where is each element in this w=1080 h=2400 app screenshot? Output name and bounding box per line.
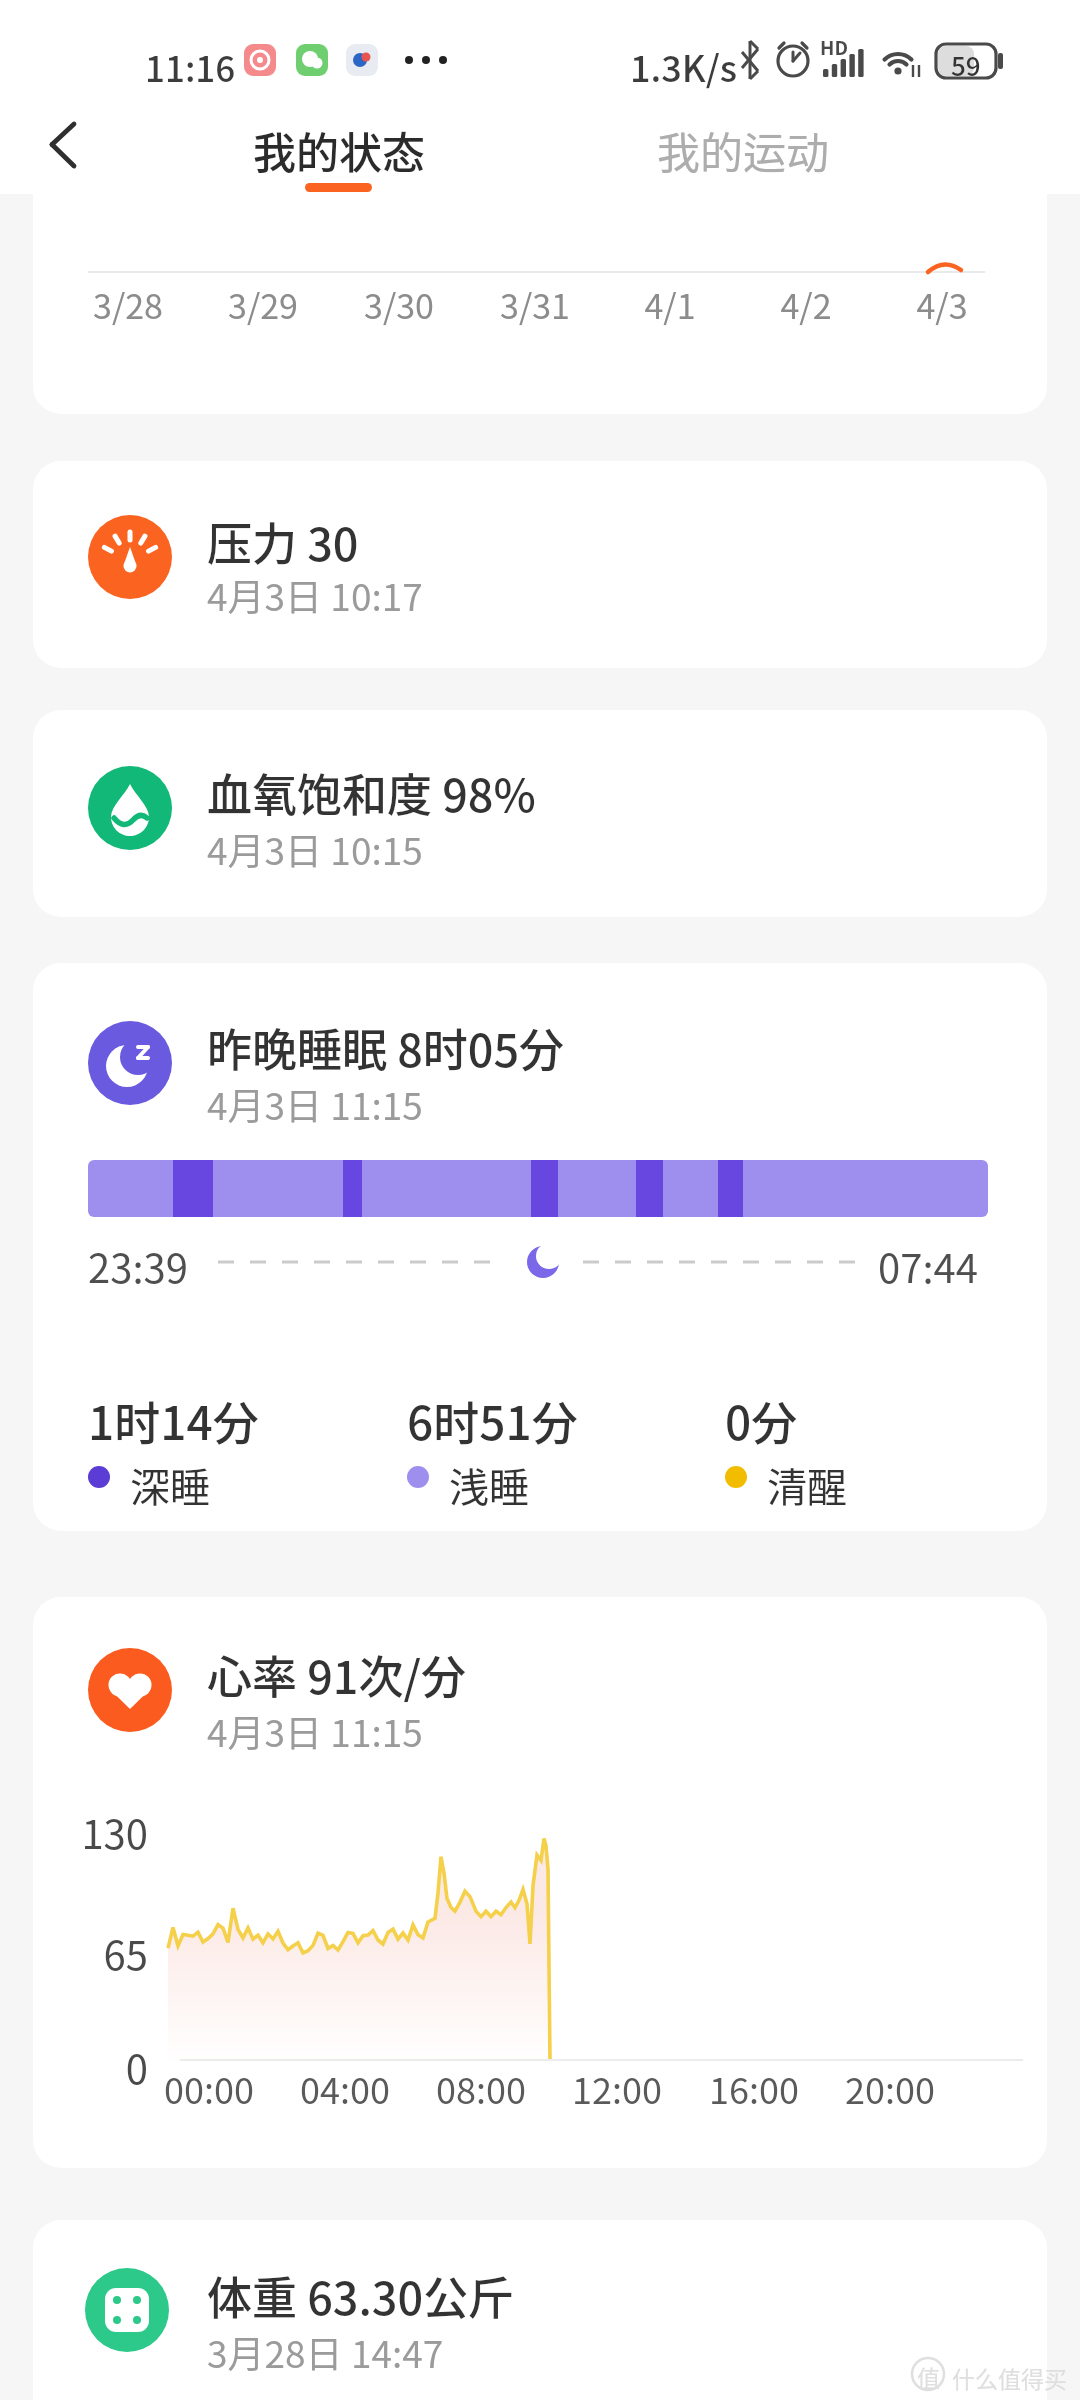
staticText: 清醒 <box>767 1456 847 1514</box>
staticText: 血氧饱和度 98% <box>207 760 536 825</box>
staticText: 浅睡 <box>449 1456 529 1514</box>
staticText: 3月28日 14:47 <box>207 2325 444 2379</box>
button[interactable]: 血氧饱和度 98% <box>33 710 1047 917</box>
staticText: 1时14分 <box>88 1387 259 1454</box>
button[interactable]: 3/28 <box>33 194 1047 414</box>
staticText: 65 <box>58 1924 148 1982</box>
staticText: 我的运动 <box>657 119 829 181</box>
staticText: HD <box>820 33 848 61</box>
button[interactable]: 昨晚睡眠 8时05分 <box>33 963 1047 1531</box>
button[interactable]: 压力 30 <box>33 461 1047 668</box>
staticText: 3/30 <box>339 280 459 329</box>
staticText: 4/2 <box>746 280 866 329</box>
staticText: 值 <box>917 2360 940 2393</box>
staticText: 3/28 <box>68 280 188 329</box>
staticText: 16:00 <box>684 2062 824 2114</box>
staticText: 3/31 <box>475 280 595 329</box>
button[interactable]: 我的状态 <box>248 114 432 194</box>
staticText: 6时51分 <box>407 1387 578 1454</box>
button[interactable]: 我的运动 <box>652 114 836 194</box>
staticText: 4/3 <box>882 280 1002 329</box>
staticText: 4月3日 11:15 <box>207 1077 423 1131</box>
staticText: 0 <box>58 2038 148 2096</box>
staticText: 23:39 <box>88 1237 188 1295</box>
staticText: 1.3K/s <box>630 40 737 92</box>
staticText: 4月3日 11:15 <box>207 1704 423 1758</box>
staticText: 昨晚睡眠 8时05分 <box>207 1015 565 1080</box>
staticText: 4/1 <box>610 280 730 329</box>
staticText: 59 <box>951 46 981 84</box>
staticText: 4月3日 10:17 <box>207 568 423 622</box>
staticText: 深睡 <box>130 1456 210 1514</box>
staticText: 4月3日 10:15 <box>207 822 423 876</box>
staticText: 00:00 <box>139 2062 279 2114</box>
staticText: 压力 30 <box>207 509 359 574</box>
button[interactable]: 体重 63.30公斤 <box>33 2220 1047 2400</box>
staticText: 07:44 <box>878 1237 978 1295</box>
staticText: 08:00 <box>411 2062 551 2114</box>
staticText: 12:00 <box>547 2062 687 2114</box>
staticText: 我的状态 <box>253 119 425 181</box>
staticText: 心率 91次/分 <box>207 1642 466 1707</box>
staticText: 11:16 <box>145 41 236 92</box>
button[interactable] <box>36 114 92 178</box>
button[interactable]: 心率 91次/分 <box>33 1597 1047 2168</box>
staticText: 3/29 <box>203 280 323 329</box>
staticText: 20:00 <box>820 2062 960 2114</box>
staticText: 0分 <box>725 1387 798 1454</box>
staticText: 什么值得买 <box>952 2361 1067 2394</box>
staticText: 体重 63.30公斤 <box>207 2263 514 2328</box>
staticText: 04:00 <box>275 2062 415 2114</box>
staticText: 130 <box>58 1803 148 1861</box>
